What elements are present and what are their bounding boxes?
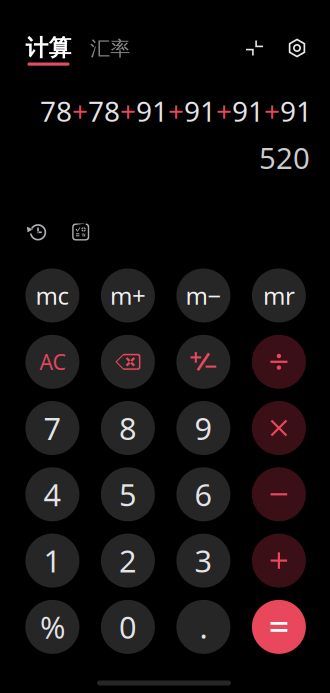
staticText: 4 [43, 474, 61, 515]
button[interactable]: 0 [101, 600, 155, 654]
button[interactable]: 计算 [23, 33, 73, 76]
button[interactable]: mc [25, 268, 79, 322]
staticText: 78 [40, 92, 72, 130]
button[interactable]: Divide [252, 335, 306, 389]
staticText: 1 [43, 540, 61, 581]
button[interactable]: 5 [101, 467, 155, 521]
staticText: 5 [119, 474, 137, 515]
staticText: . [199, 606, 207, 647]
button[interactable]: 9 [176, 401, 230, 455]
button[interactable]: mr [252, 268, 306, 322]
button[interactable]: Delete [101, 335, 155, 389]
staticText: 91 [136, 92, 168, 130]
staticText: + [72, 92, 88, 130]
staticText: 2 [119, 540, 137, 581]
staticText: + [168, 92, 184, 130]
button[interactable]: Equals [252, 600, 306, 654]
staticText: 91 [184, 92, 216, 130]
button[interactable]: Plus minus [176, 335, 230, 389]
button[interactable]: 汇率 [90, 33, 130, 63]
staticText: 91 [232, 92, 264, 130]
staticText: mc [35, 280, 69, 311]
staticText: m+ [110, 280, 146, 311]
button[interactable]: Plus [252, 534, 306, 588]
button[interactable]: 8 [101, 401, 155, 455]
button[interactable]: 1 [25, 534, 79, 588]
button[interactable]: Settings [280, 31, 314, 65]
button[interactable]: 7 [25, 401, 79, 455]
staticText: AC [39, 348, 65, 376]
button[interactable]: 2 [101, 534, 155, 588]
staticText: 计算 [25, 34, 71, 62]
staticText: % [40, 606, 65, 647]
button[interactable]: History [20, 215, 54, 249]
button[interactable]: m− [176, 268, 230, 322]
button[interactable]: . [176, 600, 230, 654]
staticText: 78 [88, 92, 120, 130]
staticText: + [120, 92, 136, 130]
button[interactable]: 6 [176, 467, 230, 521]
button[interactable]: 4 [25, 467, 79, 521]
staticText: 7 [43, 408, 61, 448]
staticText: + [264, 92, 280, 130]
staticText: 91 [280, 92, 312, 130]
button[interactable]: Scientific keypad [64, 215, 98, 249]
staticText: mr [263, 280, 295, 311]
staticText: + [216, 92, 232, 130]
staticText: 汇率 [90, 36, 130, 61]
button[interactable]: m+ [101, 268, 155, 322]
button[interactable]: % [25, 600, 79, 654]
button[interactable]: AC [25, 335, 79, 389]
staticText: 6 [194, 474, 212, 515]
button[interactable]: Collapse [237, 31, 271, 65]
staticText: m− [185, 280, 221, 311]
button[interactable]: Multiply [252, 401, 306, 455]
staticText: 8 [119, 408, 137, 448]
staticText: 3 [194, 540, 212, 581]
staticText: 0 [119, 606, 137, 647]
button[interactable]: 3 [176, 534, 230, 588]
button[interactable]: Minus [252, 467, 306, 521]
staticText: 520 [259, 138, 310, 177]
staticText: 9 [194, 408, 212, 448]
